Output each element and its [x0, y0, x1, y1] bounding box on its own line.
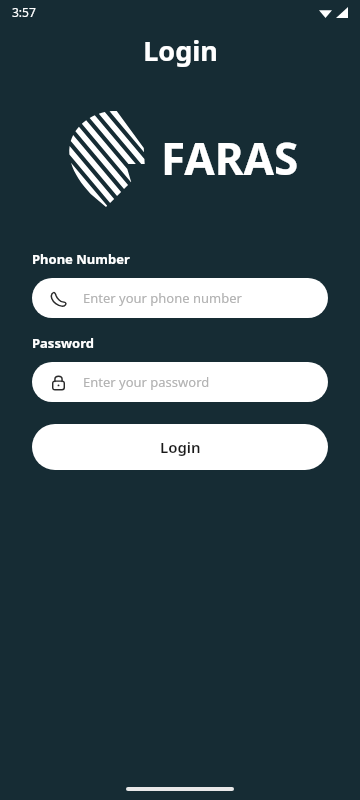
- button[interactable]: Phone: [32, 278, 328, 318]
- staticText: 3:57: [12, 4, 36, 20]
- staticText: Phone Number: [32, 250, 130, 268]
- staticText: Enter your phone number: [83, 289, 242, 307]
- button[interactable]: Login: [32, 424, 328, 470]
- staticText: Enter your password: [83, 373, 210, 391]
- staticText: Login: [160, 437, 201, 457]
- staticText: Password: [32, 334, 94, 352]
- other: FARAS logo: [61, 108, 151, 208]
- staticText: Login: [143, 32, 218, 69]
- staticText: FARAS: [161, 128, 299, 188]
- button[interactable]: Password: [32, 362, 328, 402]
- other: Phone: [50, 290, 67, 307]
- other: Password: [50, 374, 67, 391]
